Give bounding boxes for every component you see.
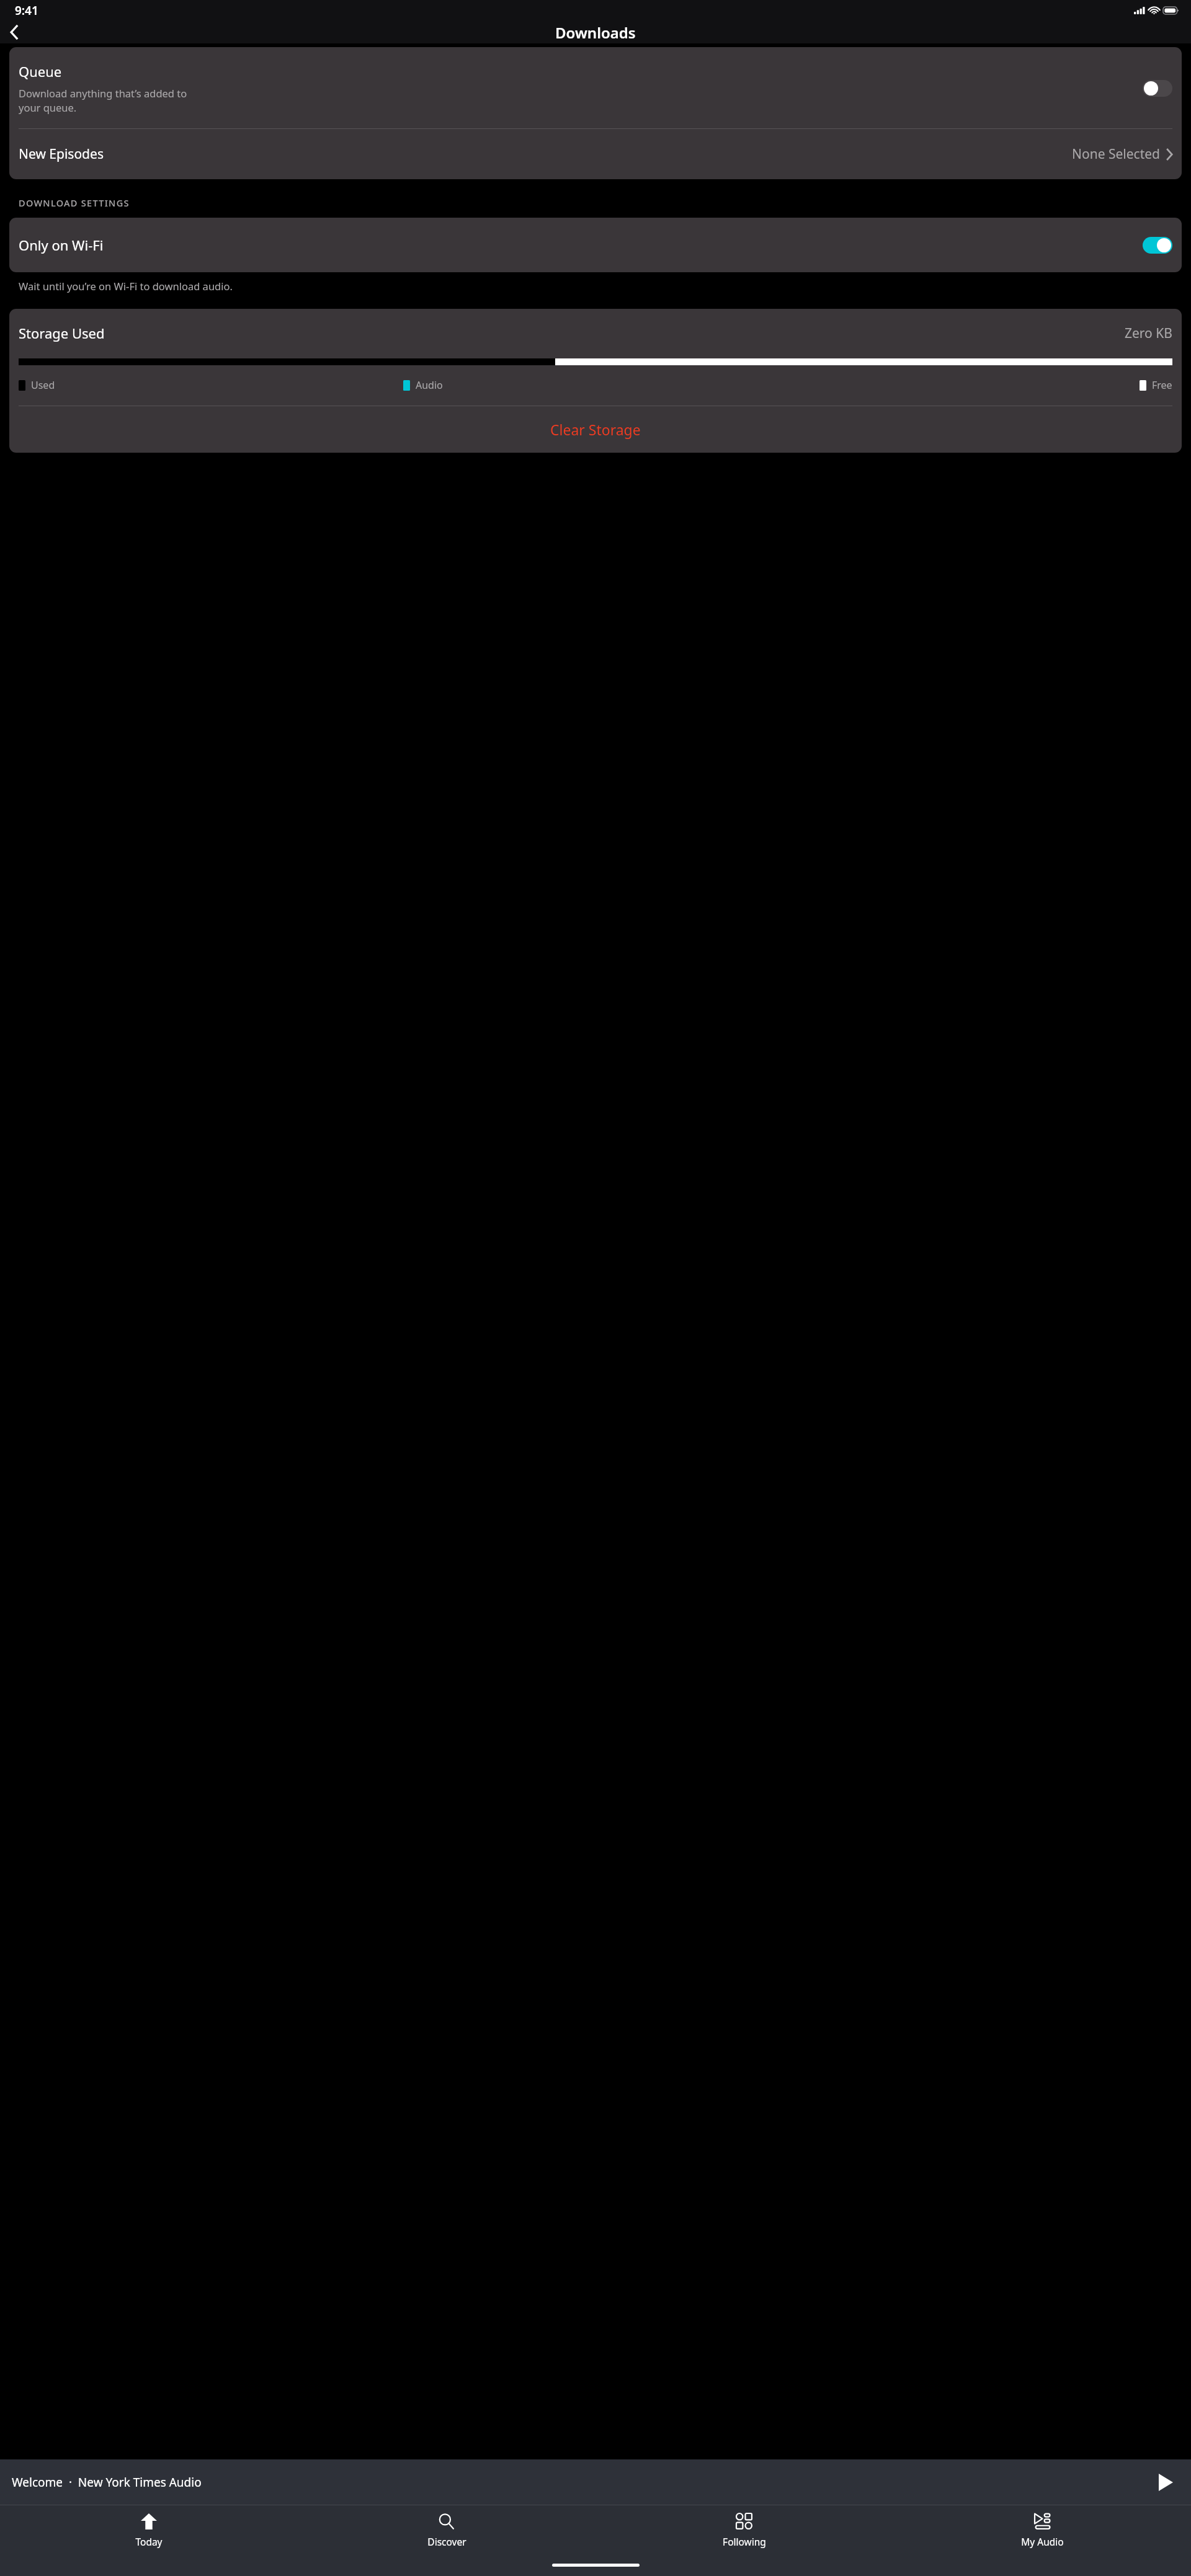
staticText: Audio	[416, 378, 443, 392]
staticText: Only on Wi-Fi	[19, 236, 1143, 254]
staticText: Today	[135, 2535, 163, 2548]
staticText: Free	[1152, 378, 1172, 392]
button[interactable]: Discover	[298, 2505, 595, 2558]
staticText: Storage Used	[19, 324, 1125, 342]
button[interactable]: Clear Storage	[9, 406, 1182, 453]
staticText: Download anything that’s added to your q…	[19, 86, 187, 115]
staticText: Zero KB	[1125, 324, 1172, 342]
button[interactable]: Play	[1152, 2469, 1179, 2496]
staticText: Used	[31, 378, 55, 392]
button[interactable]: New Episodes	[9, 129, 1182, 179]
button[interactable]: Queue	[9, 47, 1182, 128]
button[interactable]: Today	[0, 2505, 298, 2558]
staticText: New Episodes	[19, 145, 1072, 163]
button[interactable]: On	[1143, 237, 1172, 254]
staticText: None Selected	[1072, 145, 1161, 163]
staticText: Welcome · New York Times Audio	[12, 2474, 1152, 2490]
staticText: Discover	[427, 2535, 466, 2548]
button[interactable]: Only on Wi-Fi	[9, 218, 1182, 272]
button[interactable]: My Audio	[893, 2505, 1191, 2558]
staticText: Queue	[19, 62, 62, 81]
button[interactable]: Back	[0, 21, 27, 43]
staticText: DOWNLOAD SETTINGS	[19, 197, 130, 209]
staticText: Downloads	[555, 22, 636, 43]
staticText: Following	[723, 2535, 766, 2548]
staticText: Wait until you’re on Wi-Fi to download a…	[19, 279, 233, 293]
button[interactable]: Off	[1143, 80, 1172, 97]
button[interactable]: Welcome · New York Times Audio	[0, 2459, 1191, 2505]
staticText: My Audio	[1021, 2535, 1064, 2548]
staticText: 9:41	[15, 2, 38, 19]
button[interactable]: Following	[595, 2505, 893, 2558]
staticText: Clear Storage	[550, 420, 641, 439]
